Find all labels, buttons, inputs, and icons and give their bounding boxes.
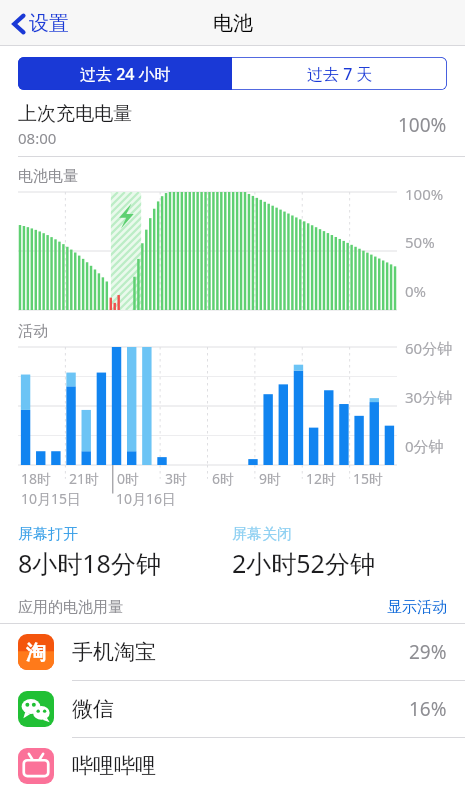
staticText: 30分钟: [405, 387, 453, 407]
staticText: 0分钟: [405, 436, 444, 456]
button[interactable]: 过去 7 天: [232, 57, 447, 90]
button[interactable]: 微信: [0, 681, 465, 737]
staticText: 屏幕打开: [18, 525, 78, 544]
staticText: 电池: [213, 11, 253, 36]
staticText: 哔哩哔哩: [72, 753, 447, 779]
staticText: 100%: [398, 112, 447, 138]
staticText: 100%: [405, 184, 444, 204]
staticText: 淘: [26, 640, 46, 665]
staticText: 手机淘宝: [72, 639, 409, 665]
staticText: 过去 24 小时: [80, 63, 171, 85]
staticText: 显示活动: [387, 598, 447, 617]
staticText: 18时: [21, 469, 52, 488]
staticText: 08:00: [18, 128, 57, 148]
button[interactable]: 哔哩哔哩: [0, 738, 465, 794]
staticText: 设置: [29, 11, 69, 36]
staticText: 29%: [409, 639, 447, 665]
staticText: 过去 7 天: [307, 63, 373, 85]
staticText: 3时: [165, 469, 188, 488]
staticText: 6时: [212, 469, 235, 488]
staticText: 12时: [306, 469, 337, 488]
button[interactable]: 淘: [0, 624, 465, 680]
staticText: 50%: [405, 232, 435, 252]
staticText: 电池电量: [18, 167, 78, 186]
staticText: 9时: [259, 469, 282, 488]
button[interactable]: 设置: [8, 7, 73, 40]
button[interactable]: 过去 24 小时: [18, 57, 232, 90]
staticText: 应用的电池用量: [18, 598, 387, 617]
staticText: 21时: [69, 469, 100, 488]
staticText: 2小时52分钟: [232, 546, 375, 580]
button[interactable]: 显示活动: [387, 598, 447, 617]
staticText: 0%: [405, 281, 427, 301]
staticText: 60分钟: [405, 338, 453, 358]
staticText: 屏幕关闭: [232, 525, 292, 544]
staticText: 8小时18分钟: [18, 546, 161, 580]
staticText: 10月15日: [21, 489, 82, 508]
staticText: 活动: [18, 322, 48, 341]
staticText: 上次充电电量: [18, 102, 132, 126]
staticText: 10月16日: [116, 489, 177, 508]
staticText: 0时: [117, 469, 140, 488]
staticText: 微信: [72, 696, 409, 722]
staticText: 16%: [409, 696, 447, 722]
staticText: 15时: [353, 469, 384, 488]
